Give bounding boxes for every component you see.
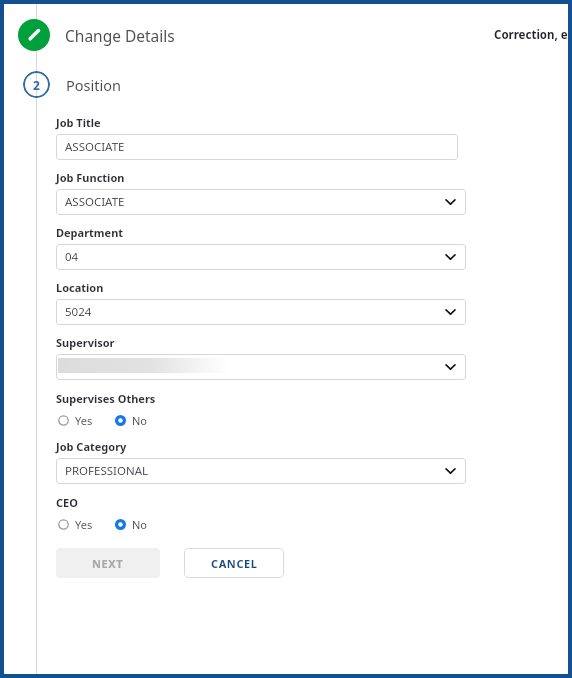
staticText: Job Title xyxy=(56,115,101,130)
staticText: Department xyxy=(56,225,124,240)
button[interactable]: Change Details completed xyxy=(18,19,50,51)
staticText: ASSOCIATE xyxy=(65,194,125,210)
button[interactable]: Yes xyxy=(56,413,93,428)
staticText: Change Details xyxy=(65,25,175,46)
staticText: NEXT xyxy=(92,556,124,571)
button[interactable]: 04 xyxy=(56,244,466,270)
button[interactable]: Supervisor selection xyxy=(56,354,466,380)
staticText: PROFESSIONAL xyxy=(65,463,149,479)
button[interactable]: NEXT xyxy=(56,548,160,578)
staticText: CANCEL xyxy=(211,556,258,571)
button[interactable]: Yes xyxy=(56,517,93,532)
staticText: Supervises Others xyxy=(56,391,156,406)
staticText: Supervisor xyxy=(56,335,115,350)
staticText: Job Function xyxy=(56,170,125,185)
staticText: Yes xyxy=(75,517,93,532)
staticText: CEO xyxy=(56,495,78,510)
button[interactable]: ASSOCIATE xyxy=(56,134,458,160)
button[interactable]: PROFESSIONAL xyxy=(56,458,466,484)
button[interactable]: No xyxy=(115,517,148,532)
staticText: No xyxy=(132,413,148,428)
staticText: Location xyxy=(56,280,104,295)
staticText: Yes xyxy=(75,413,93,428)
button[interactable]: 5024 xyxy=(56,299,466,325)
staticText: Correction, e xyxy=(494,27,568,43)
staticText: 04 xyxy=(65,249,79,265)
staticText: Job Category xyxy=(56,439,127,454)
staticText: Position xyxy=(66,75,121,95)
staticText: ASSOCIATE xyxy=(65,139,125,155)
staticText: No xyxy=(132,517,148,532)
button[interactable]: 2 xyxy=(23,71,50,98)
button[interactable]: ASSOCIATE xyxy=(56,189,466,215)
button[interactable]: No xyxy=(115,413,148,428)
staticText: 5024 xyxy=(65,304,92,320)
staticText: 2 xyxy=(33,77,40,93)
button[interactable]: CANCEL xyxy=(184,548,284,578)
